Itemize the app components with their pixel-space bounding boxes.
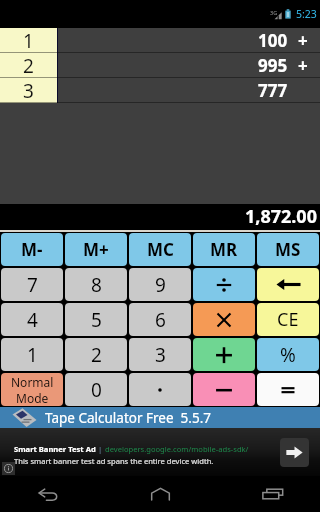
staticText: + bbox=[298, 54, 308, 77]
staticText: 2 bbox=[91, 342, 102, 368]
staticText: developers.google.com/mobile-ads-sdk/ bbox=[105, 444, 249, 454]
staticText: 1 bbox=[27, 342, 38, 368]
staticText: 3 bbox=[23, 78, 34, 103]
staticText: Mode bbox=[16, 390, 49, 406]
staticText: MR bbox=[210, 238, 238, 261]
button[interactable]: MS bbox=[257, 233, 319, 266]
button[interactable]: % bbox=[257, 338, 319, 371]
button[interactable]: 6 bbox=[129, 303, 191, 336]
button[interactable]: Home bbox=[137, 479, 183, 509]
button[interactable]: CE bbox=[257, 303, 319, 336]
button[interactable]: 8 bbox=[65, 268, 127, 301]
button[interactable]: 7 bbox=[1, 268, 63, 301]
staticText: 8 bbox=[91, 272, 102, 298]
button[interactable] bbox=[257, 268, 319, 301]
staticText: MC bbox=[147, 238, 174, 261]
button[interactable] bbox=[193, 338, 255, 371]
staticText: Normal bbox=[11, 374, 54, 390]
staticText: M- bbox=[21, 238, 43, 261]
button[interactable] bbox=[129, 373, 191, 406]
button[interactable]: 3 bbox=[129, 338, 191, 371]
staticText: 2 bbox=[23, 53, 34, 78]
button[interactable]: Back bbox=[25, 479, 71, 509]
button[interactable]: Ad info bbox=[2, 462, 15, 475]
staticText: 5 bbox=[91, 307, 102, 333]
staticText: This smart banner test ad spans the enti… bbox=[14, 456, 214, 466]
staticText: 995 bbox=[258, 54, 288, 77]
staticText: 5:23 bbox=[296, 7, 317, 21]
button[interactable]: M- bbox=[1, 233, 63, 266]
staticText: M+ bbox=[83, 238, 109, 261]
staticText: 1 bbox=[23, 28, 34, 53]
button[interactable]: 4 bbox=[1, 303, 63, 336]
staticText: 1,872.00 bbox=[245, 204, 317, 226]
staticText: 7 bbox=[27, 272, 38, 298]
staticText: Tape Calculator Free 5.5.7 bbox=[45, 409, 211, 427]
staticText: 0 bbox=[91, 377, 102, 403]
button[interactable]: MC bbox=[129, 233, 191, 266]
button[interactable]: 2 bbox=[65, 338, 127, 371]
staticText: MS bbox=[275, 238, 301, 261]
button[interactable]: Tape Calculator Free 5.5.7 bbox=[0, 407, 320, 428]
staticText: 9 bbox=[155, 272, 166, 298]
staticText: + bbox=[298, 29, 308, 52]
button[interactable] bbox=[193, 373, 255, 406]
button[interactable]: Recent apps bbox=[250, 479, 296, 509]
staticText: 3 bbox=[155, 342, 166, 368]
button[interactable] bbox=[193, 268, 255, 301]
button[interactable]: MR bbox=[193, 233, 255, 266]
staticText: Smart Banner Test Ad bbox=[14, 444, 96, 454]
button[interactable]: 9 bbox=[129, 268, 191, 301]
button[interactable] bbox=[193, 303, 255, 336]
staticText: % bbox=[280, 342, 296, 368]
button[interactable]: 0 bbox=[65, 373, 127, 406]
button[interactable]: 5 bbox=[65, 303, 127, 336]
staticText: 3G bbox=[270, 9, 278, 16]
staticText: 6 bbox=[155, 307, 166, 333]
staticText: 4 bbox=[27, 307, 38, 333]
button[interactable]: Normal bbox=[1, 373, 63, 406]
button[interactable]: M+ bbox=[65, 233, 127, 266]
staticText: | bbox=[96, 444, 105, 454]
button[interactable]: Open advertisement bbox=[280, 438, 309, 467]
button[interactable] bbox=[257, 373, 319, 406]
staticText: 100 bbox=[258, 29, 288, 52]
staticText: 777 bbox=[258, 79, 288, 102]
button[interactable]: 1 bbox=[1, 338, 63, 371]
staticText: CE bbox=[277, 307, 299, 332]
